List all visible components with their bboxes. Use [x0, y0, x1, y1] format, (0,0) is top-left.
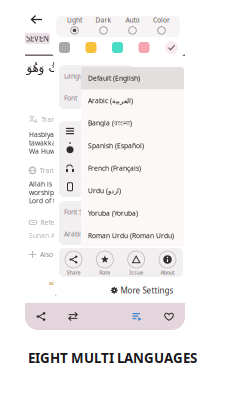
- staticText: Reference: [40, 218, 72, 227]
- button[interactable]: Spanish (Español): [81, 134, 184, 157]
- staticText: Font: [64, 94, 77, 102]
- staticText: Arabic: [64, 230, 84, 238]
- button[interactable]: More Settings: [107, 281, 177, 300]
- staticText: Dark: [95, 16, 111, 24]
- staticText: Light: [67, 16, 82, 24]
- staticText: Auto: [125, 16, 139, 24]
- button[interactable]: Back: [28, 11, 45, 28]
- staticText: Hasbiyallahu laa ilaaha illa: [29, 130, 116, 139]
- button[interactable]: Compare: [57, 303, 89, 330]
- staticText: Sunan Abi Dawud 5081: [29, 231, 103, 240]
- staticText: Yoruba (Yoruba): [88, 209, 138, 218]
- button[interactable]: Grey theme: [59, 42, 70, 53]
- button[interactable]: Bangla (বাংলা): [81, 112, 184, 134]
- staticText: About: [160, 269, 174, 276]
- button[interactable]: Teal theme: [112, 42, 123, 53]
- button[interactable]: Dark: [89, 16, 118, 34]
- button[interactable]: French (Français): [81, 157, 184, 179]
- staticText: Arabic (العربية): [88, 96, 133, 105]
- button[interactable]: Roman Urdu (Roman Urdu): [81, 224, 184, 247]
- button[interactable]: Urdu (اردو): [81, 179, 184, 202]
- staticText: Translation: [39, 166, 74, 175]
- staticText: 文: [29, 114, 36, 123]
- staticText: Roman Urdu (Roman Urdu): [88, 231, 174, 240]
- staticText: Bangla (বাংলা): [88, 118, 132, 128]
- staticText: ثُ وَهُوَ: [26, 61, 59, 75]
- staticText: Wa Huwa 'alaa kulli shai'in: [29, 147, 115, 156]
- staticText: Font Size: [64, 208, 92, 216]
- button[interactable]: Playlist: [121, 303, 153, 330]
- staticText: Transliteration: [41, 115, 87, 124]
- button[interactable]: Share: [25, 303, 57, 330]
- staticText: A: [34, 117, 37, 124]
- button[interactable]: Issue: [128, 251, 145, 276]
- button[interactable]: [59, 140, 133, 159]
- button[interactable]: Favourite: [153, 303, 185, 330]
- staticText: Default (English): [88, 74, 140, 83]
- button[interactable]: Light: [60, 16, 89, 34]
- button[interactable]: Font Size: [59, 201, 133, 223]
- button[interactable]: Rate: [96, 251, 113, 276]
- button[interactable]: Auto: [118, 16, 147, 34]
- staticText: Language: [64, 72, 95, 80]
- staticText: Also find in: [40, 250, 75, 259]
- button[interactable]: About: [159, 251, 176, 276]
- button[interactable]: Arabic: [59, 223, 133, 245]
- button[interactable]: Confirm colour: [165, 41, 178, 54]
- staticText: Dua: [55, 289, 68, 298]
- staticText: EIGHT MULTI LANGUAGES: [28, 349, 197, 367]
- staticText: worshipped but He. In Him I put: [29, 188, 130, 197]
- staticText: Share: [66, 269, 80, 276]
- staticText: Rate: [99, 269, 110, 276]
- staticText: Urdu (اردو): [88, 186, 121, 195]
- button[interactable]: Yoruba (Yoruba): [81, 202, 184, 224]
- staticText: More Settings: [120, 285, 173, 296]
- button[interactable]: [59, 177, 133, 196]
- button[interactable]: Language: [59, 65, 133, 87]
- button[interactable]: Default (English): [81, 67, 184, 89]
- button[interactable]: Color: [147, 16, 176, 34]
- staticText: tawakkaltu wa huwa Rabbul: [29, 138, 118, 147]
- staticText: Issue: [129, 269, 143, 276]
- button[interactable]: Amber theme: [85, 42, 96, 53]
- staticText: French (Français): [88, 164, 141, 173]
- staticText: Allah is sufficient for me; there: [29, 179, 126, 188]
- button[interactable]: [59, 159, 133, 177]
- staticText: Spanish (Español): [88, 141, 144, 150]
- button[interactable]: Share: [65, 251, 82, 276]
- button[interactable]: [59, 122, 133, 140]
- button[interactable]: Font: [59, 87, 133, 109]
- button[interactable]: Pink theme: [138, 42, 149, 53]
- button[interactable]: Arabic (العربية): [81, 89, 184, 112]
- staticText: Color: [153, 16, 170, 24]
- staticText: SEVEN: [26, 33, 49, 44]
- staticText: Lord of the Mighty Throne.: [29, 196, 113, 205]
